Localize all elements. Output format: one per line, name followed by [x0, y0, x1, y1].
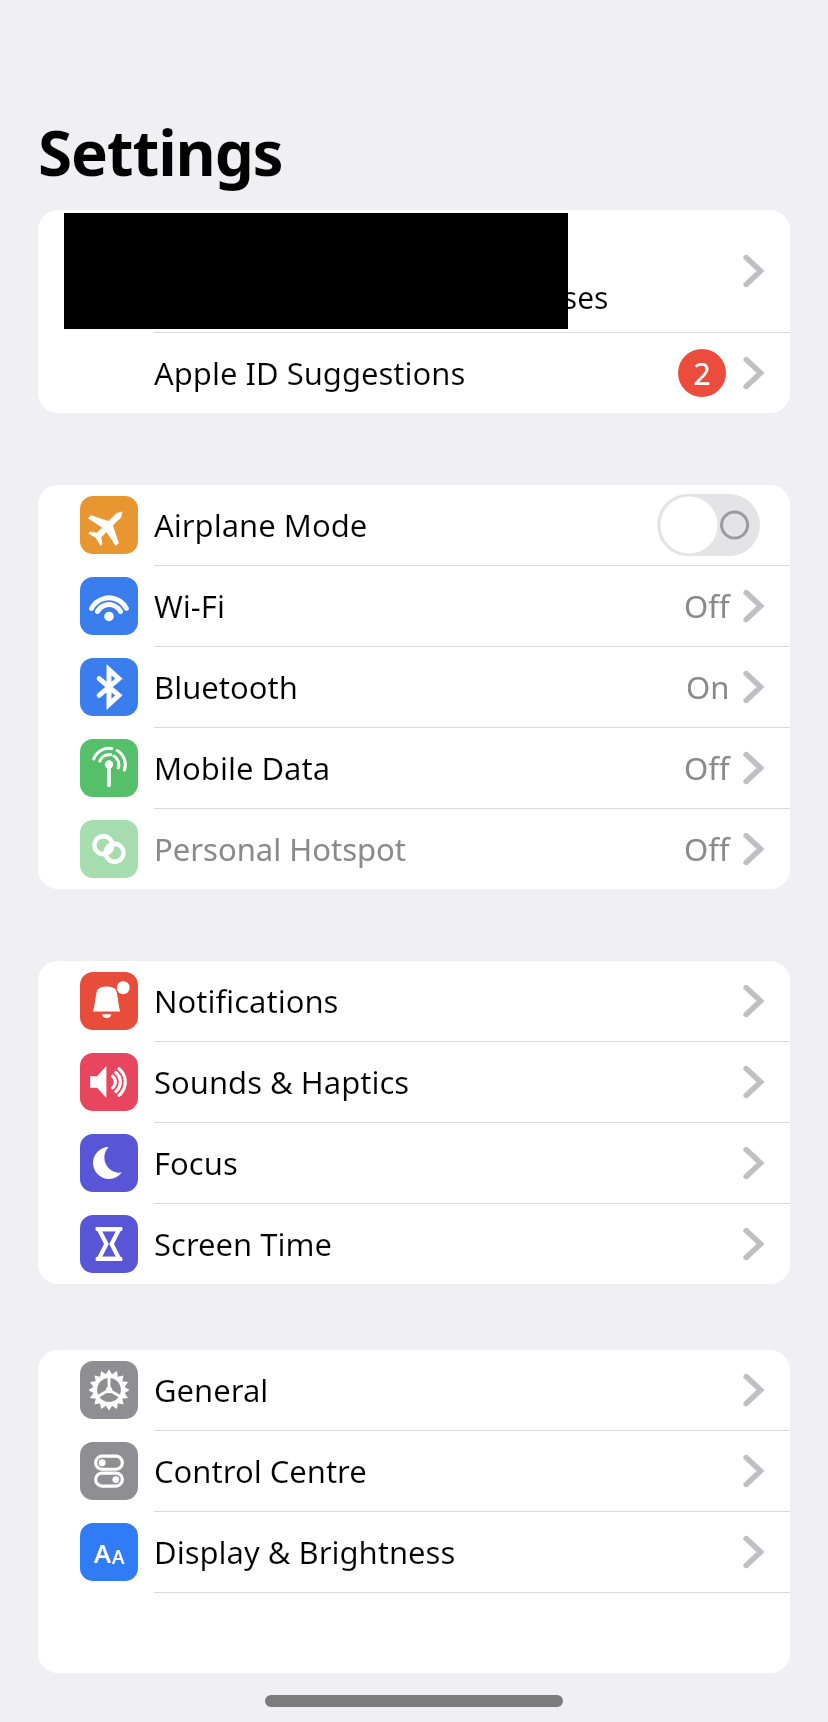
staticText: Off — [684, 585, 730, 627]
button[interactable]: Apple ID Suggestions — [38, 333, 790, 413]
staticText: A — [94, 1535, 112, 1570]
staticText: Sounds & Haptics — [154, 1061, 410, 1103]
staticText: Apple ID Suggestions — [154, 352, 466, 394]
button[interactable]: Screen Time — [38, 1204, 790, 1284]
staticText: ases — [546, 277, 609, 318]
button[interactable]: Bluetooth — [38, 647, 790, 727]
button[interactable]: Airplane Mode — [38, 485, 790, 565]
staticText: Focus — [154, 1142, 238, 1184]
button[interactable]: Wi-Fi — [38, 566, 790, 646]
button[interactable]: Mobile Data — [38, 728, 790, 808]
button[interactable]: A — [38, 1512, 790, 1592]
staticText: 2 — [693, 353, 711, 394]
staticText: Settings — [38, 110, 283, 194]
staticText: Off — [684, 747, 730, 789]
button[interactable]: General — [38, 1350, 790, 1430]
staticText: Off — [684, 828, 730, 870]
staticText: Wi-Fi — [154, 585, 225, 627]
staticText: Mobile Data — [154, 747, 331, 789]
staticText: On — [686, 666, 730, 708]
staticText: A — [112, 1544, 125, 1570]
button[interactable]: Sounds & Haptics — [38, 1042, 790, 1122]
staticText: General — [154, 1369, 269, 1411]
staticText: Screen Time — [154, 1223, 332, 1265]
staticText: Personal Hotspot — [154, 828, 407, 870]
button[interactable]: Focus — [38, 1123, 790, 1203]
button[interactable]: Control Centre — [38, 1431, 790, 1511]
staticText: Notifications — [154, 980, 339, 1022]
staticText: Bluetooth — [154, 666, 298, 708]
staticText: Control Centre — [154, 1450, 367, 1492]
button[interactable]: Airplane Mode toggle, off — [657, 494, 760, 556]
button[interactable]: Notifications — [38, 961, 790, 1041]
staticText: Display & Brightness — [154, 1531, 456, 1573]
button[interactable]: ases — [38, 210, 790, 332]
staticText: Airplane Mode — [154, 504, 368, 546]
button[interactable]: Personal Hotspot — [38, 809, 790, 889]
